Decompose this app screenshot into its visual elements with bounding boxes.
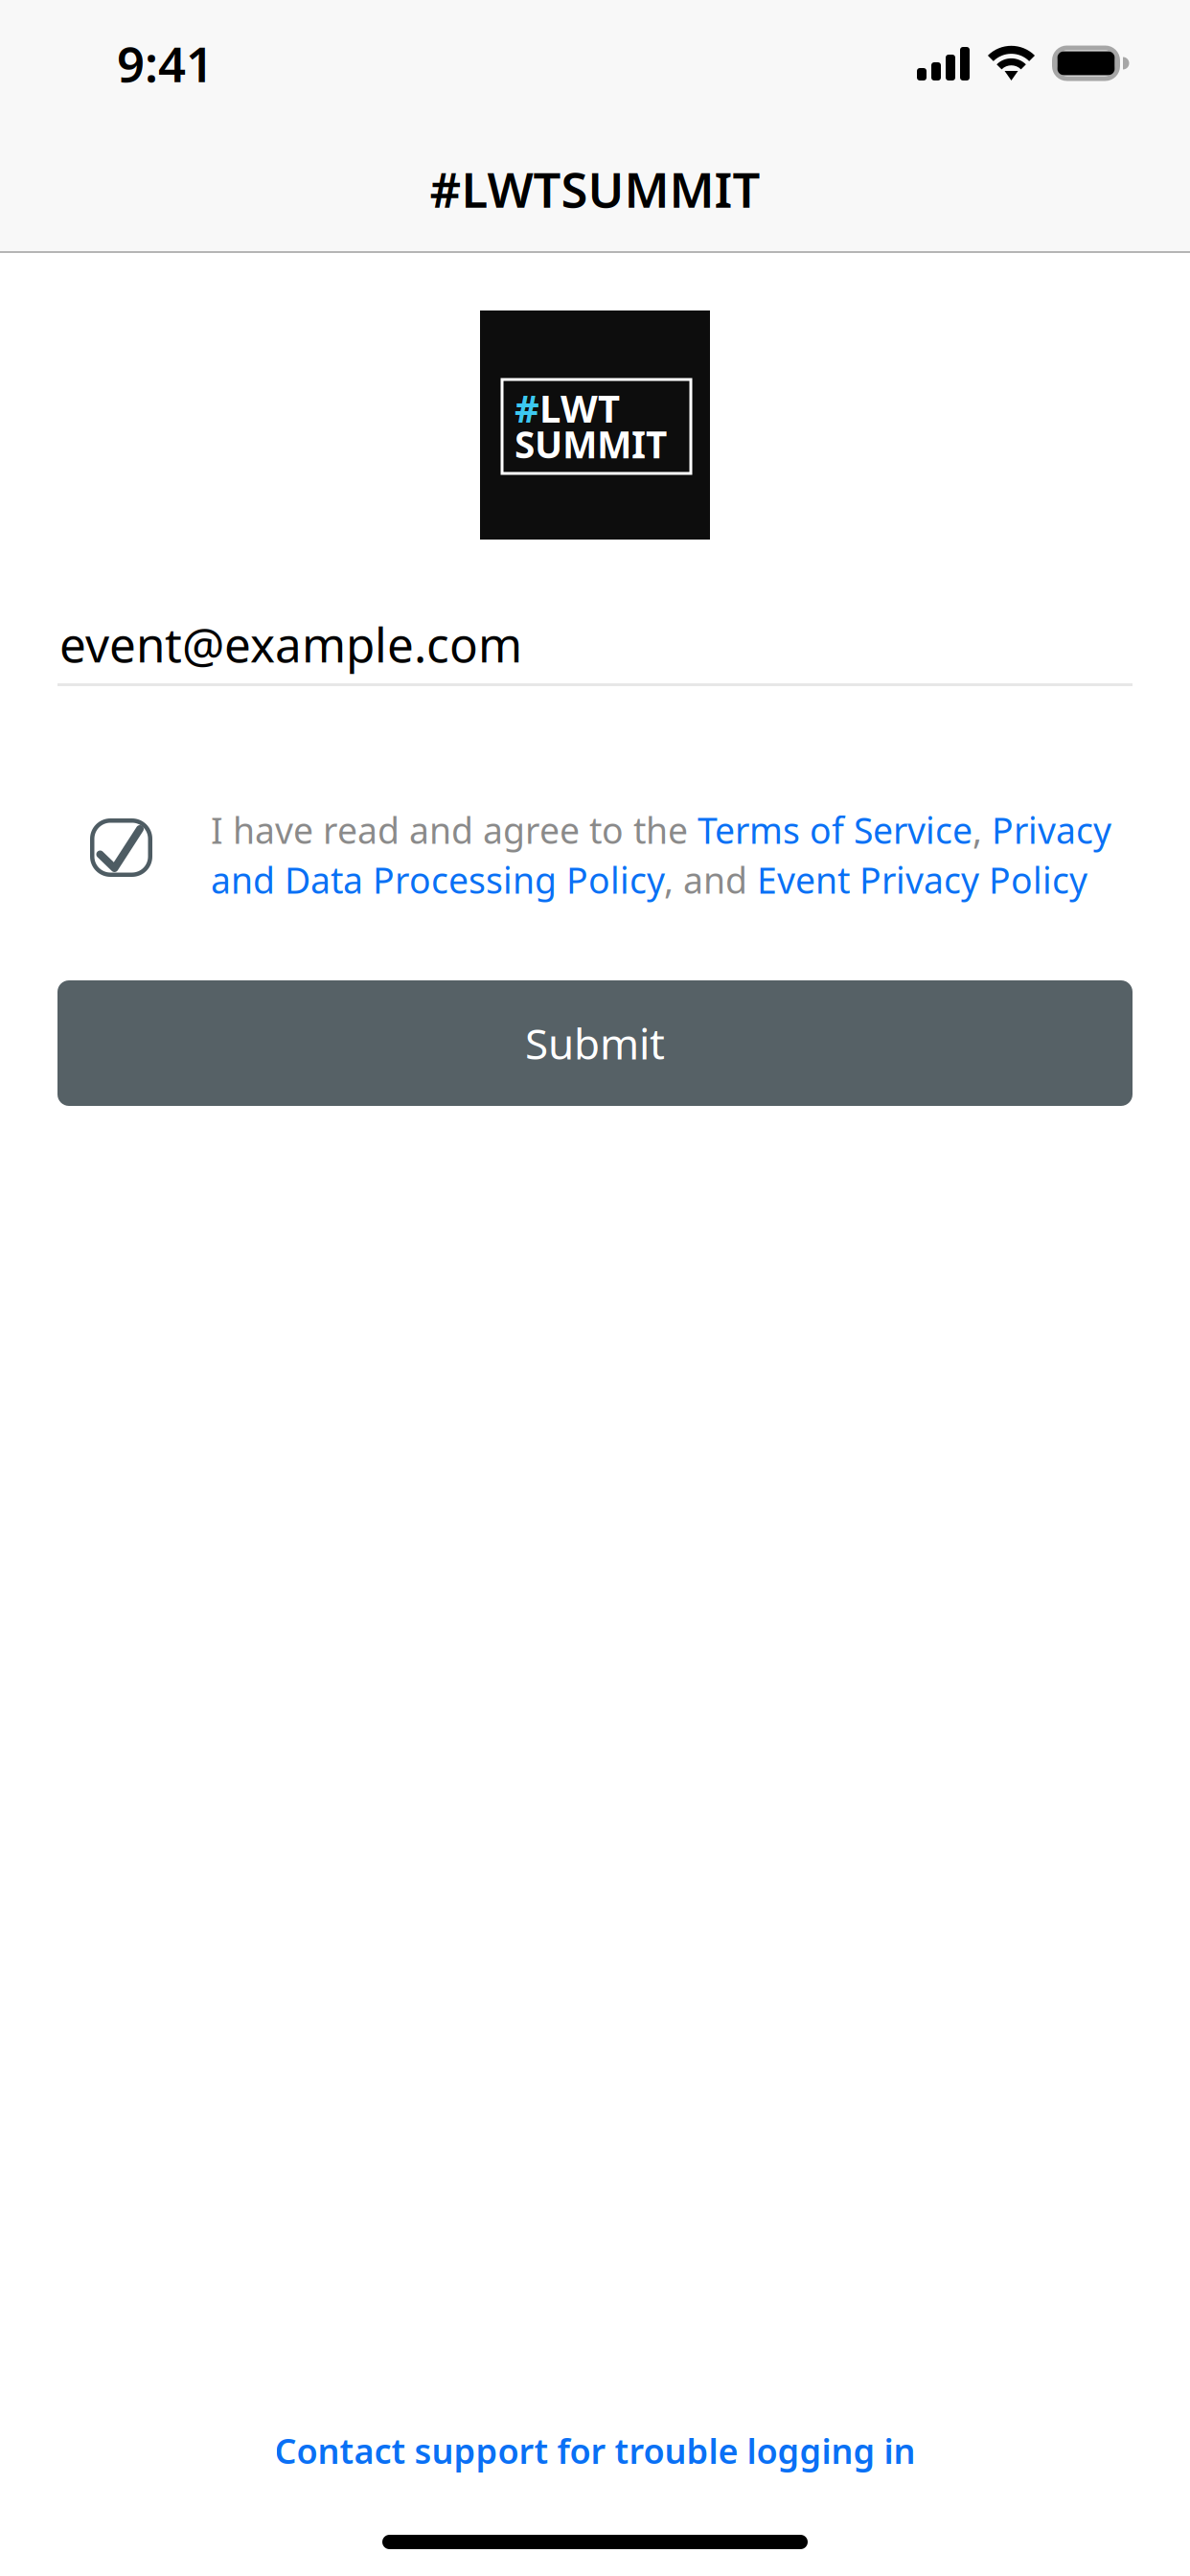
button[interactable]: I agree to the terms bbox=[90, 805, 152, 877]
staticText: 9:41 bbox=[117, 31, 214, 96]
staticText: I have read and agree to the Terms of Se… bbox=[211, 806, 1111, 854]
staticText: SUMMIT bbox=[515, 419, 667, 469]
staticText: # bbox=[515, 382, 539, 433]
staticText: event@example.com bbox=[59, 613, 522, 675]
staticText: Contact support for trouble logging in bbox=[275, 2428, 915, 2473]
button[interactable]: I have read and agree to the Terms of Se… bbox=[152, 805, 1111, 905]
staticText: LWT bbox=[539, 382, 620, 433]
staticText: #LWTSUMMIT bbox=[430, 157, 760, 221]
button[interactable]: Contact support for trouble logging in bbox=[0, 2422, 1190, 2479]
button[interactable]: Email address bbox=[0, 540, 1190, 686]
staticText: and Data Processing Policy, and Event Pr… bbox=[211, 856, 1087, 904]
staticText: Submit bbox=[525, 1015, 665, 1071]
button[interactable]: Submit bbox=[0, 905, 1190, 1106]
